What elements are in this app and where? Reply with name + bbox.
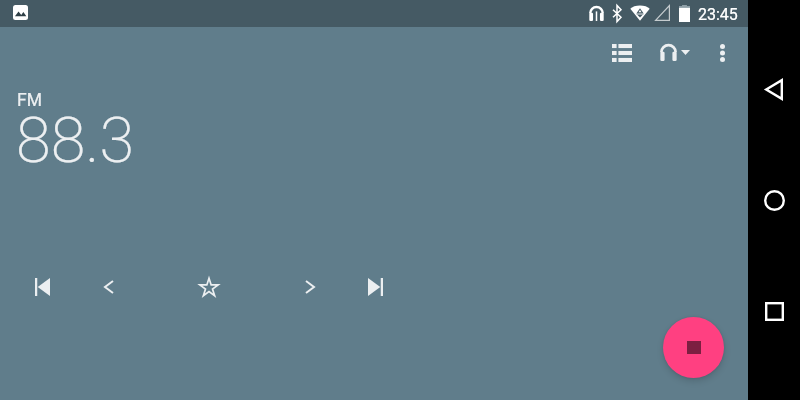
button[interactable]: Tune down: [91, 269, 127, 305]
other: Headphones connected: [589, 5, 604, 21]
button[interactable]: Previous station: [24, 269, 60, 305]
staticText: 88.3: [16, 104, 135, 178]
button[interactable]: Audio output: [652, 29, 698, 77]
other: Mobile signal: [655, 5, 670, 21]
button[interactable]: Stop: [663, 317, 724, 378]
button[interactable]: Station list: [598, 29, 646, 77]
other: Wi-Fi: [630, 4, 650, 21]
button[interactable]: Next station: [357, 269, 393, 305]
button[interactable]: Tune up: [292, 269, 328, 305]
button[interactable]: Recents: [748, 285, 800, 337]
other: Bluetooth on: [612, 5, 622, 22]
staticText: 23:45: [698, 5, 738, 24]
button[interactable]: Back: [748, 63, 800, 115]
button[interactable]: Favorite: [191, 269, 227, 305]
button[interactable]: More options: [698, 29, 746, 77]
button[interactable]: Home: [748, 174, 800, 226]
staticText: FM: [17, 90, 42, 111]
other: Battery: [679, 5, 690, 22]
